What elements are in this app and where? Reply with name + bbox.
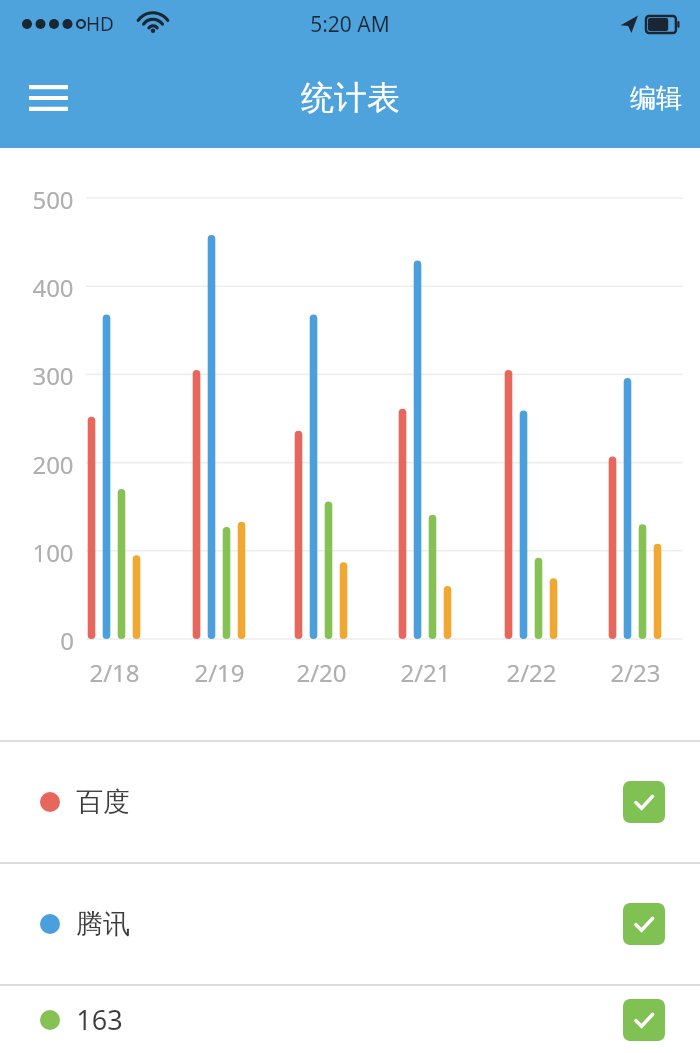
- staticText: 百度: [76, 785, 130, 819]
- staticText: 163: [76, 1001, 123, 1038]
- button[interactable]: Toggle 腾讯: [623, 903, 665, 945]
- staticText: 0: [60, 624, 74, 654]
- staticText: 编辑: [630, 82, 682, 115]
- staticText: 5:20 AM: [310, 10, 390, 39]
- staticText: 2/23: [610, 656, 661, 688]
- staticText: 100: [32, 536, 74, 566]
- button[interactable]: Menu: [18, 75, 78, 121]
- staticText: 2/21: [400, 656, 451, 688]
- button[interactable]: 腾讯: [0, 864, 700, 984]
- staticText: 2/20: [296, 656, 347, 688]
- staticText: 400: [32, 271, 74, 301]
- staticText: 300: [32, 359, 74, 389]
- button[interactable]: 163: [0, 986, 700, 1053]
- button[interactable]: Toggle 163: [623, 999, 665, 1041]
- staticText: 500: [32, 183, 74, 213]
- staticText: 2/19: [194, 656, 245, 688]
- staticText: HD: [86, 11, 114, 37]
- button[interactable]: 百度: [0, 742, 700, 862]
- button[interactable]: Toggle 百度: [623, 781, 665, 823]
- staticText: 统计表: [301, 77, 400, 119]
- staticText: 2/22: [506, 656, 557, 688]
- staticText: 腾讯: [76, 907, 130, 941]
- staticText: 200: [32, 448, 74, 478]
- staticText: 2/18: [89, 656, 140, 688]
- button[interactable]: 编辑: [630, 82, 682, 115]
